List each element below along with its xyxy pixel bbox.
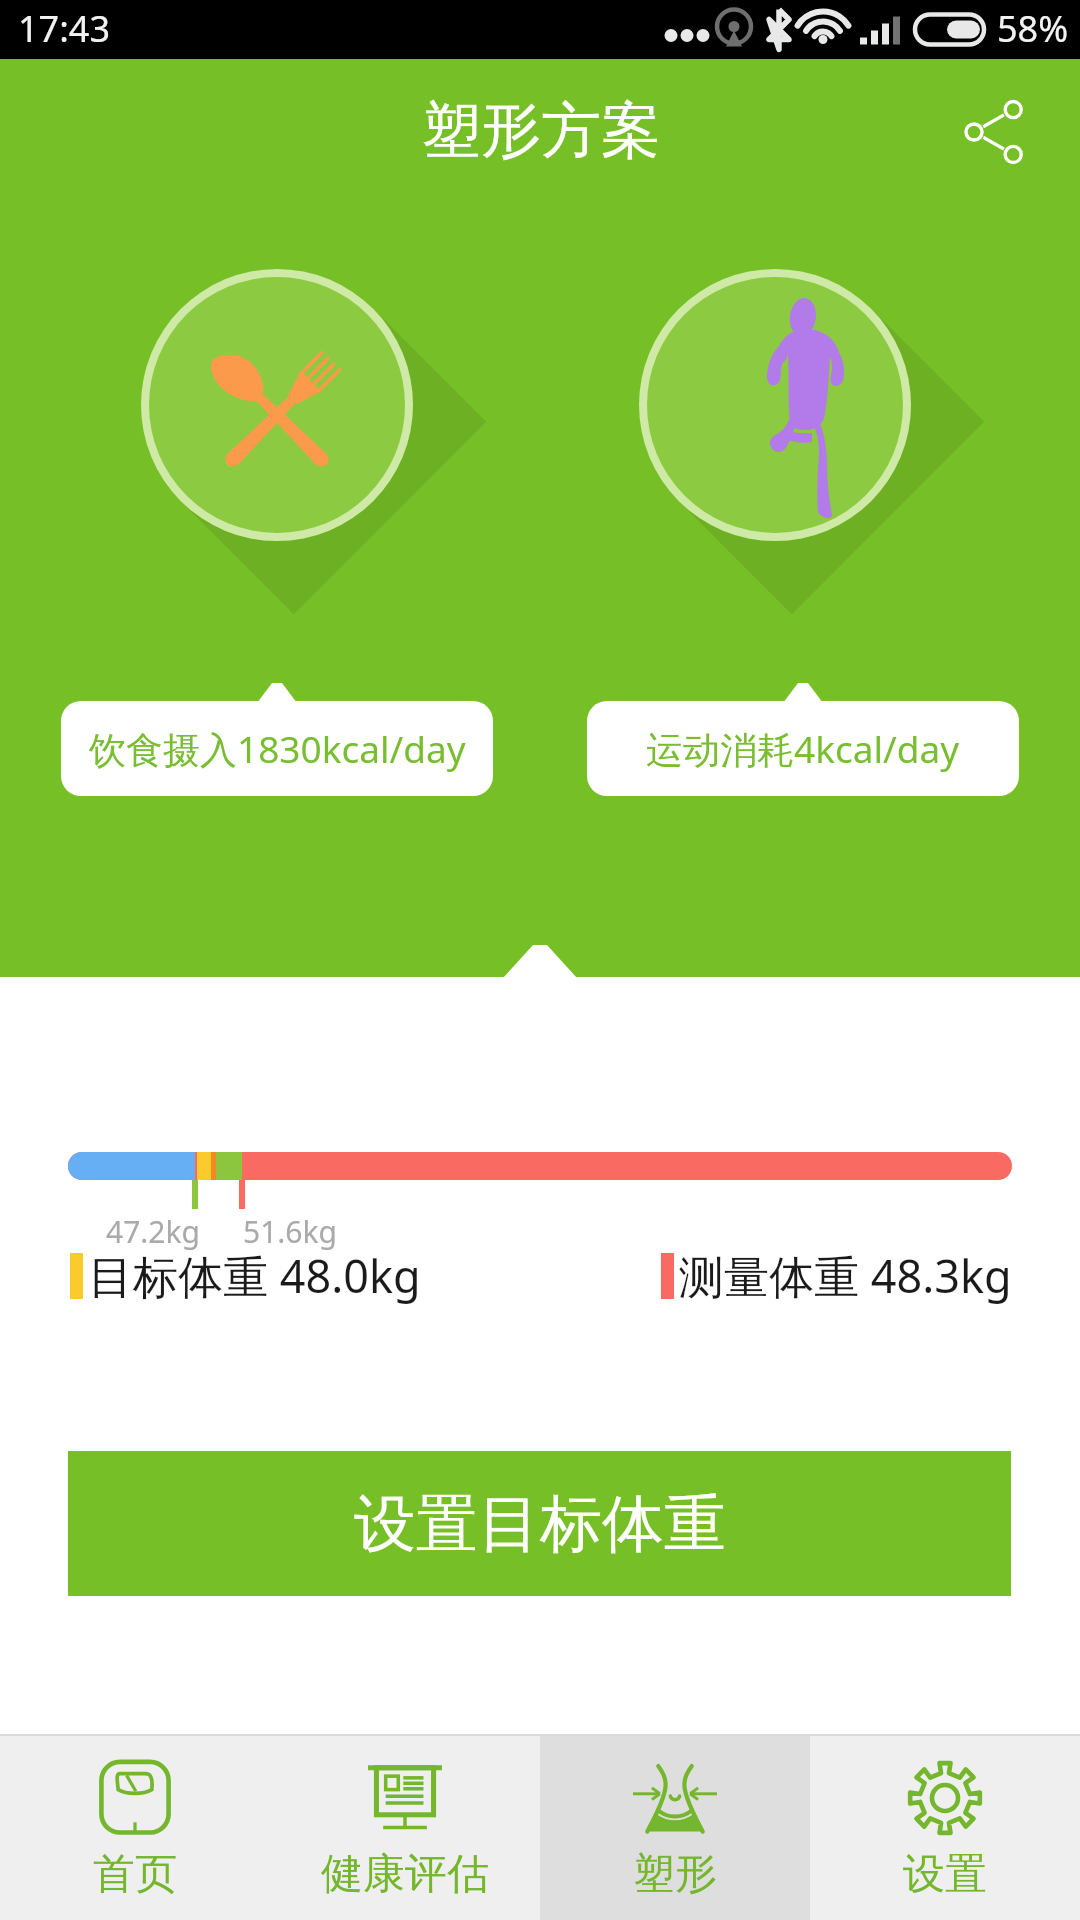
staticText: 47.2kg <box>106 1211 200 1252</box>
staticText: 58% <box>997 4 1069 53</box>
staticText: 设置 <box>903 1848 987 1901</box>
staticText: 目标体重 48.0kg <box>88 1245 421 1306</box>
button[interactable]: 塑形 <box>540 1736 810 1920</box>
staticText: 塑形方案 <box>421 93 661 169</box>
staticText: 设置目标体重 <box>354 1485 726 1563</box>
staticText: 51.6kg <box>243 1211 337 1252</box>
button[interactable]: 健康评估 <box>270 1736 540 1920</box>
staticText: 健康评估 <box>321 1848 489 1901</box>
button[interactable]: 首页 <box>0 1736 270 1920</box>
button[interactable]: 运动消耗4kcal/day <box>587 701 1019 796</box>
staticText: 饮食摄入1830kcal/day <box>89 723 466 774</box>
button[interactable]: 饮食摄入1830kcal/day <box>61 701 493 796</box>
staticText: 17:43 <box>18 4 111 53</box>
button[interactable]: 设置目标体重 <box>68 1451 1011 1596</box>
staticText: 测量体重 48.3kg <box>679 1245 1012 1306</box>
button[interactable]: 设置 <box>810 1736 1080 1920</box>
button[interactable]: Share <box>960 97 1030 167</box>
staticText: 首页 <box>93 1848 177 1901</box>
staticText: 运动消耗4kcal/day <box>646 723 960 774</box>
staticText: 塑形 <box>633 1848 717 1901</box>
